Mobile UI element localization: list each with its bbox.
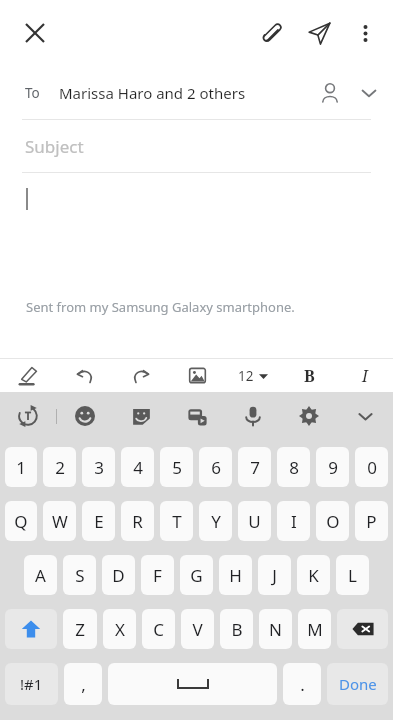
staticText: 4: [133, 456, 143, 479]
staticText: D: [112, 564, 125, 587]
button[interactable]: N: [259, 609, 292, 649]
button[interactable]: P: [355, 501, 388, 541]
button[interactable]: R: [121, 501, 154, 541]
staticText: L: [348, 564, 357, 587]
button[interactable]: Done: [327, 663, 388, 705]
staticText: I: [291, 510, 297, 533]
staticText: To: [25, 84, 40, 102]
button[interactable]: K: [297, 555, 330, 595]
button[interactable]: T: [160, 501, 193, 541]
button[interactable]: I: [337, 359, 393, 392]
button[interactable]: Attach file: [247, 9, 295, 57]
button[interactable]: Keyboard settings: [281, 392, 337, 440]
staticText: V: [192, 618, 203, 641]
staticText: B: [231, 618, 243, 641]
button[interactable]: 4: [121, 447, 154, 487]
staticText: Z: [75, 618, 85, 641]
button[interactable]: W: [43, 501, 76, 541]
button[interactable]: Close: [12, 10, 58, 56]
staticText: 0: [367, 456, 377, 479]
staticText: N: [269, 618, 282, 641]
staticText: K: [308, 564, 319, 587]
button[interactable]: More options: [343, 11, 387, 55]
button[interactable]: 3: [82, 447, 115, 487]
button[interactable]: ,: [64, 663, 102, 705]
staticText: 2: [55, 456, 65, 479]
button[interactable]: B: [220, 609, 253, 649]
button[interactable]: Y: [199, 501, 232, 541]
button[interactable]: Z: [63, 609, 97, 649]
staticText: J: [272, 564, 277, 587]
button[interactable]: Q: [5, 501, 37, 541]
button[interactable]: U: [238, 501, 271, 541]
button[interactable]: Translate: [0, 392, 56, 440]
button[interactable]: Subject: [0, 120, 393, 172]
button[interactable]: 7: [238, 447, 271, 487]
staticText: 6: [211, 456, 221, 479]
staticText: 9: [328, 456, 338, 479]
button[interactable]: Symbols: [5, 663, 58, 705]
button[interactable]: D: [102, 555, 135, 595]
button[interactable]: Highlight: [0, 359, 57, 392]
staticText: Marissa Haro and 2 others: [59, 83, 309, 103]
button[interactable]: G: [180, 555, 213, 595]
button[interactable]: O: [316, 501, 349, 541]
button[interactable]: 6: [199, 447, 232, 487]
button[interactable]: .: [283, 663, 321, 705]
button[interactable]: GIF: [169, 392, 225, 440]
staticText: Y: [211, 510, 221, 533]
button[interactable]: Undo: [57, 359, 113, 392]
staticText: C: [153, 618, 164, 641]
staticText: P: [366, 510, 377, 533]
button[interactable]: To: [0, 66, 393, 119]
button[interactable]: 0: [355, 447, 388, 487]
button[interactable]: 5: [160, 447, 193, 487]
button[interactable]: Send: [295, 9, 343, 57]
button[interactable]: 9: [316, 447, 349, 487]
staticText: Done: [339, 674, 377, 694]
staticText: W: [52, 510, 68, 533]
staticText: 5: [172, 456, 182, 479]
button[interactable]: C: [142, 609, 175, 649]
staticText: A: [35, 564, 46, 587]
staticText: 3: [94, 456, 104, 479]
button[interactable]: Insert image: [169, 359, 225, 392]
button[interactable]: B: [281, 359, 337, 392]
staticText: B: [304, 365, 315, 387]
button[interactable]: F: [141, 555, 174, 595]
button[interactable]: J: [258, 555, 291, 595]
button[interactable]: M: [298, 609, 331, 649]
staticText: F: [153, 564, 162, 587]
staticText: M: [307, 618, 323, 641]
button[interactable]: Shift: [5, 609, 57, 649]
button[interactable]: Sent from my Samsung Galaxy smartphone.: [0, 173, 393, 358]
button[interactable]: Stickers: [113, 392, 169, 440]
button[interactable]: Backspace: [337, 609, 388, 649]
staticText: Sent from my Samsung Galaxy smartphone.: [26, 298, 295, 316]
button[interactable]: 8: [277, 447, 310, 487]
button[interactable]: Voice input: [225, 392, 281, 440]
button[interactable]: X: [103, 609, 136, 649]
button[interactable]: 1: [5, 447, 37, 487]
button[interactable]: Choose contacts: [309, 72, 351, 114]
button[interactable]: 2: [43, 447, 76, 487]
button[interactable]: Space: [108, 663, 277, 705]
button[interactable]: I: [277, 501, 310, 541]
staticText: T: [172, 510, 182, 533]
button[interactable]: Emoji: [57, 392, 113, 440]
staticText: G: [190, 564, 203, 587]
button[interactable]: Collapse toolbar: [337, 392, 393, 440]
staticText: E: [94, 510, 104, 533]
button[interactable]: Redo: [113, 359, 169, 392]
button[interactable]: Font size 12: [225, 359, 281, 392]
button[interactable]: S: [63, 555, 96, 595]
staticText: H: [229, 564, 242, 587]
staticText: 12: [238, 367, 254, 385]
button[interactable]: E: [82, 501, 115, 541]
button[interactable]: H: [219, 555, 252, 595]
button[interactable]: V: [181, 609, 214, 649]
button[interactable]: Expand recipients: [351, 72, 387, 114]
button[interactable]: A: [24, 555, 57, 595]
staticText: U: [248, 510, 261, 533]
button[interactable]: L: [336, 555, 369, 595]
